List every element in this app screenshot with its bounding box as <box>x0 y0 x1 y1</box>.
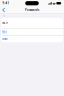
button[interactable]: Wi-Fi <box>1 18 63 29</box>
staticText: Wi-Fi <box>2 21 8 25</box>
staticText: Edit <box>2 30 7 34</box>
button[interactable]: Edit <box>1 29 63 35</box>
staticText: Erase <box>2 37 8 41</box>
staticText: 9:41 <box>3 1 10 5</box>
staticText: Passwords <box>25 8 39 12</box>
staticText: INFO <box>3 15 6 17</box>
button[interactable]: Back <box>0 6 9 13</box>
button[interactable]: Erase <box>1 36 63 42</box>
